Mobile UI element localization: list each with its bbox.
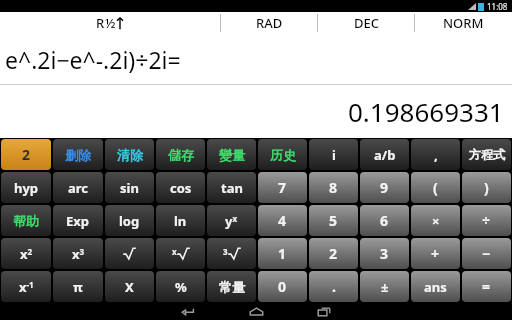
button[interactable]: Exp: [53, 205, 103, 236]
staticText: 帮助: [13, 213, 39, 229]
staticText: arc: [68, 179, 89, 197]
button[interactable]: log: [105, 205, 154, 236]
staticText: 11:08: [487, 1, 508, 12]
staticText: x: [172, 246, 177, 257]
button[interactable]: √: [207, 238, 256, 269]
button[interactable]: 9: [360, 172, 409, 203]
button[interactable]: Angle memory: [0, 12, 220, 34]
button[interactable]: Back: [165, 303, 211, 320]
button[interactable]: +: [411, 238, 460, 269]
button[interactable]: RAD: [221, 12, 317, 34]
button[interactable]: a/b: [360, 139, 409, 170]
staticText: 4: [278, 211, 287, 230]
staticText: ln: [174, 212, 187, 230]
button[interactable]: 4: [258, 205, 307, 236]
button[interactable]: 帮助: [1, 205, 51, 236]
button[interactable]: X: [105, 271, 154, 302]
button[interactable]: 清除: [105, 139, 154, 170]
button[interactable]: −: [462, 238, 511, 269]
button[interactable]: ,: [411, 139, 460, 170]
button[interactable]: ±: [360, 271, 409, 302]
staticText: x3: [72, 245, 85, 263]
button[interactable]: ÷: [462, 205, 511, 236]
staticText: 2: [22, 145, 31, 164]
button[interactable]: 2: [1, 139, 51, 170]
button[interactable]: 5: [309, 205, 358, 236]
button[interactable]: √: [105, 238, 154, 269]
staticText: NORM: [443, 14, 484, 32]
staticText: 儲存: [168, 147, 194, 163]
staticText: =: [482, 277, 491, 296]
staticText: 5: [329, 211, 338, 230]
staticText: yx: [225, 212, 238, 230]
button[interactable]: 8: [309, 172, 358, 203]
button[interactable]: 6: [360, 205, 409, 236]
staticText: 历史: [270, 147, 296, 163]
button[interactable]: 7: [258, 172, 307, 203]
staticText: π: [73, 278, 83, 296]
staticText: ×: [432, 212, 440, 230]
staticText: e^.2i−e^-.2i)÷2i=: [5, 44, 181, 75]
staticText: 8: [329, 178, 338, 197]
staticText: a/b: [374, 146, 396, 164]
button[interactable]: 删除: [53, 139, 103, 170]
staticText: 方程式: [469, 147, 505, 162]
button[interactable]: x: [1, 238, 51, 269]
button[interactable]: y: [207, 205, 256, 236]
button[interactable]: 历史: [258, 139, 307, 170]
button[interactable]: ln: [156, 205, 205, 236]
button[interactable]: x: [1, 271, 51, 302]
button[interactable]: 1: [258, 238, 307, 269]
button[interactable]: x: [53, 238, 103, 269]
staticText: X: [125, 278, 134, 296]
button[interactable]: 3: [360, 238, 409, 269]
button[interactable]: ): [462, 172, 511, 203]
button[interactable]: Home: [233, 303, 279, 320]
staticText: ): [484, 178, 489, 197]
button[interactable]: =: [462, 271, 511, 302]
button[interactable]: Recent apps: [301, 303, 347, 320]
staticText: ,: [434, 146, 438, 164]
button[interactable]: 2: [309, 238, 358, 269]
staticText: .: [332, 277, 336, 296]
staticText: sin: [120, 179, 139, 197]
button[interactable]: ×: [411, 205, 460, 236]
staticText: %: [175, 278, 187, 296]
button[interactable]: (: [411, 172, 460, 203]
button[interactable]: hyp: [1, 172, 51, 203]
button[interactable]: NORM: [415, 12, 512, 34]
button[interactable]: .: [309, 271, 358, 302]
button[interactable]: 儲存: [156, 139, 205, 170]
button[interactable]: 0: [258, 271, 307, 302]
staticText: 7: [278, 178, 287, 197]
button[interactable]: cos: [156, 172, 205, 203]
staticText: (: [433, 178, 438, 197]
staticText: −: [482, 244, 491, 263]
staticText: 變量: [219, 147, 245, 163]
staticText: +: [431, 244, 440, 263]
button[interactable]: DEC: [318, 12, 414, 34]
staticText: 1: [278, 244, 287, 263]
button[interactable]: i: [309, 139, 358, 170]
staticText: 清除: [117, 147, 143, 163]
staticText: R: [96, 14, 105, 32]
staticText: ÷: [482, 211, 491, 230]
staticText: x2: [20, 245, 33, 263]
staticText: RAD: [256, 14, 283, 32]
button[interactable]: 方程式: [462, 139, 511, 170]
button[interactable]: 變量: [207, 139, 256, 170]
staticText: tan: [221, 179, 243, 197]
button[interactable]: sin: [105, 172, 154, 203]
staticText: Exp: [66, 212, 90, 230]
button[interactable]: tan: [207, 172, 256, 203]
staticText: 6: [380, 211, 389, 230]
button[interactable]: √: [156, 238, 205, 269]
button[interactable]: %: [156, 271, 205, 302]
button[interactable]: arc: [53, 172, 103, 203]
button[interactable]: π: [53, 271, 103, 302]
button[interactable]: ans: [411, 271, 460, 302]
staticText: ans: [424, 278, 447, 296]
staticText: 删除: [65, 147, 91, 163]
staticText: 3: [380, 244, 389, 263]
button[interactable]: 常量: [207, 271, 256, 302]
